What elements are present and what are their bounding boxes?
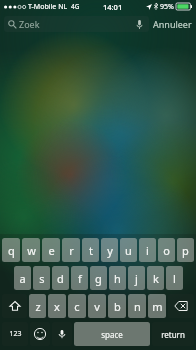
button[interactable]: a (14, 266, 31, 290)
staticText: o (163, 243, 170, 258)
staticText: k (153, 271, 159, 286)
button[interactable]: m (148, 294, 166, 318)
staticText: f (78, 271, 82, 286)
staticText: T-Mobile NL (28, 2, 68, 12)
staticText: 123 (9, 329, 22, 339)
button[interactable]: Backspace (168, 294, 194, 318)
button[interactable]: q (2, 238, 20, 262)
button[interactable]: z (29, 294, 46, 318)
staticText: g (95, 271, 102, 286)
staticText: u (125, 243, 132, 258)
staticText: j (135, 271, 138, 286)
button[interactable]: c (68, 294, 86, 318)
staticText: p (182, 243, 189, 258)
button[interactable]: 123 (2, 322, 28, 346)
staticText: w (27, 243, 36, 258)
button[interactable]: n (128, 294, 146, 318)
staticText: v (94, 299, 100, 314)
button[interactable]: s (33, 266, 50, 290)
button[interactable]: o (158, 238, 175, 262)
button[interactable]: g (90, 266, 107, 290)
button[interactable]: l (166, 266, 183, 290)
button[interactable]: x (48, 294, 66, 318)
staticText: r (69, 243, 74, 258)
staticText: t (89, 243, 93, 258)
staticText: Annuleer (153, 18, 192, 30)
button[interactable]: k (147, 266, 164, 290)
button[interactable]: d (52, 266, 69, 290)
staticText: x (54, 299, 60, 314)
button[interactable]: Dictation (52, 322, 72, 346)
button[interactable]: t (82, 238, 99, 262)
staticText: h (114, 271, 121, 286)
staticText: space (101, 329, 123, 340)
staticText: y (107, 243, 113, 258)
staticText: i (146, 243, 149, 258)
staticText: 95% (160, 2, 174, 12)
staticText: e (48, 243, 55, 258)
button[interactable]: Annuleer (153, 18, 192, 30)
staticText: q (8, 243, 15, 258)
button[interactable]: v (88, 294, 106, 318)
staticText: Zoek (19, 18, 40, 30)
button[interactable]: Shift (2, 294, 27, 318)
button[interactable]: f (71, 266, 88, 290)
staticText: a (19, 271, 26, 286)
staticText: c (74, 299, 80, 314)
button[interactable]: space (74, 322, 150, 346)
button[interactable]: e (42, 238, 60, 262)
staticText: s (39, 271, 45, 286)
button[interactable]: w (22, 238, 40, 262)
button[interactable]: y (101, 238, 118, 262)
button[interactable]: h (109, 266, 126, 290)
staticText: d (57, 271, 64, 286)
staticText: return (161, 329, 185, 340)
staticText: m (152, 299, 163, 314)
button[interactable]: i (139, 238, 156, 262)
staticText: b (114, 299, 121, 314)
button[interactable]: r (62, 238, 80, 262)
staticText: 4G (71, 2, 80, 11)
button[interactable]: return (152, 322, 194, 346)
staticText: 14:01 (103, 2, 123, 12)
staticText: l (173, 271, 176, 286)
button[interactable]: p (177, 238, 194, 262)
button[interactable]: Zoek (4, 16, 149, 32)
button[interactable]: j (128, 266, 145, 290)
staticText: z (35, 299, 41, 314)
staticText: n (134, 299, 141, 314)
button[interactable]: u (120, 238, 137, 262)
button[interactable]: Dictate (133, 18, 145, 30)
button[interactable]: b (108, 294, 126, 318)
button[interactable]: Emoji (30, 322, 50, 346)
